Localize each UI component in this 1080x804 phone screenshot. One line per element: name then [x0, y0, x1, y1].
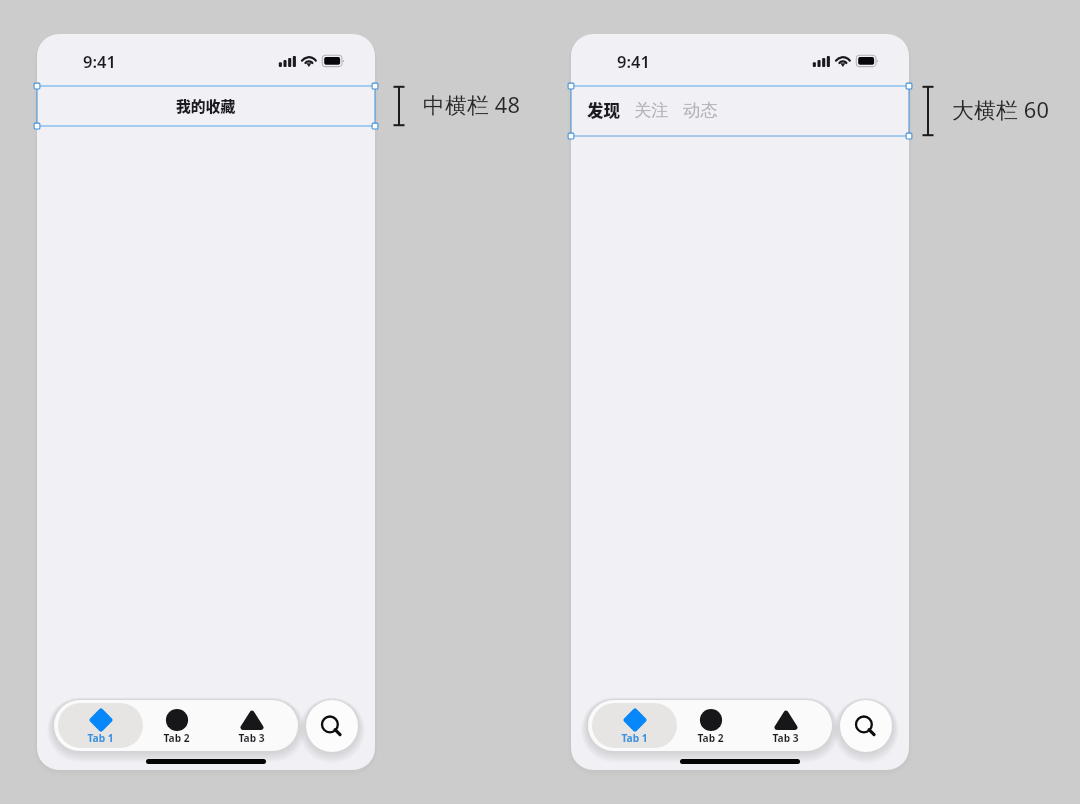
button[interactable]: Tab 2 — [139, 703, 214, 748]
button[interactable]: Search — [306, 700, 358, 752]
button[interactable]: 关注 — [634, 99, 669, 121]
staticText: 我的收藏 — [176, 95, 236, 116]
staticText: Tab 1 — [621, 731, 648, 745]
staticText: 大横栏 60 — [952, 95, 1050, 125]
button[interactable]: 动态 — [683, 99, 718, 121]
button[interactable]: Tab 3 — [214, 703, 289, 748]
staticText: 9:41 — [617, 50, 650, 72]
button[interactable]: Tab 1 — [58, 703, 143, 748]
staticText: Tab 2 — [163, 731, 190, 745]
button[interactable]: Tab 1 — [592, 703, 677, 748]
button[interactable]: 发现 — [587, 98, 620, 122]
staticText: Tab 3 — [238, 731, 265, 745]
button[interactable]: 我的收藏 — [37, 86, 375, 126]
button[interactable]: Search — [840, 700, 892, 752]
button[interactable]: Tab 3 — [748, 703, 823, 748]
staticText: 中横栏 48 — [423, 90, 521, 120]
staticText: Tab 2 — [697, 731, 724, 745]
staticText: 9:41 — [83, 50, 116, 72]
button[interactable]: Tab 2 — [673, 703, 748, 748]
staticText: Tab 3 — [772, 731, 799, 745]
staticText: Tab 1 — [87, 731, 114, 745]
